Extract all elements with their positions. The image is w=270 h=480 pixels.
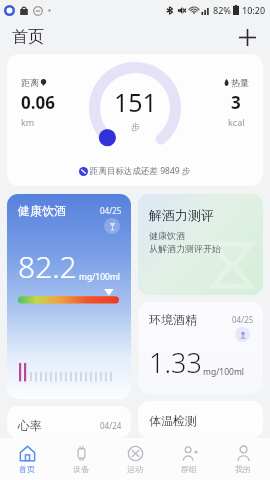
staticText: 体温检测 — [149, 413, 197, 428]
button[interactable]: 心率 — [7, 406, 131, 438]
staticText: 环境酒精 — [149, 312, 197, 327]
button[interactable]: 解酒力测评 — [138, 194, 263, 295]
staticText: kcal — [228, 116, 245, 128]
staticText: 距离目标达成还差 9849 步 — [90, 165, 191, 177]
staticText: 设备 — [73, 464, 89, 474]
staticText: 151 — [114, 85, 157, 119]
staticText: 运动 — [127, 464, 143, 474]
staticText: mg/100ml — [79, 271, 121, 283]
staticText: 82.2 — [18, 246, 77, 287]
staticText: 82% — [213, 4, 231, 16]
button[interactable]: 首页 — [0, 438, 54, 480]
staticText: 我的 — [235, 464, 251, 474]
button[interactable]: 群组 — [162, 438, 216, 480]
staticText: 04/25 — [232, 314, 254, 325]
staticText: 10:20 — [242, 4, 266, 16]
staticText: 1.33 — [149, 344, 202, 381]
staticText: 04/24 — [100, 420, 122, 431]
staticText: 健康饮酒 — [18, 203, 66, 218]
staticText: 热量 — [231, 77, 249, 88]
button[interactable]: 我的 — [216, 438, 270, 480]
staticText: 群组 — [181, 464, 197, 474]
button[interactable]: Add — [234, 24, 260, 50]
staticText: 首页 — [12, 27, 44, 47]
button[interactable]: 151 — [7, 54, 263, 186]
button[interactable]: 环境酒精 — [138, 302, 263, 394]
staticText: 04/25 — [100, 205, 122, 216]
button[interactable]: 体温检测 — [138, 401, 263, 438]
staticText: 0.06 — [21, 91, 55, 114]
staticText: 首页 — [19, 464, 35, 474]
staticText: 健康饮酒 — [149, 230, 185, 241]
button[interactable]: 健康饮酒 — [7, 194, 131, 399]
button[interactable]: 设备 — [54, 438, 108, 480]
button[interactable]: 运动 — [108, 438, 162, 480]
staticText: km — [21, 116, 35, 128]
staticText: 从解酒力测评开始 — [149, 243, 221, 254]
staticText: 步 — [131, 121, 140, 132]
staticText: 解酒力测评 — [149, 207, 214, 223]
staticText: 3 — [231, 91, 241, 114]
staticText: 心率 — [18, 418, 42, 433]
staticText: 距离 — [21, 77, 39, 88]
staticText: mg/100ml — [203, 366, 245, 378]
